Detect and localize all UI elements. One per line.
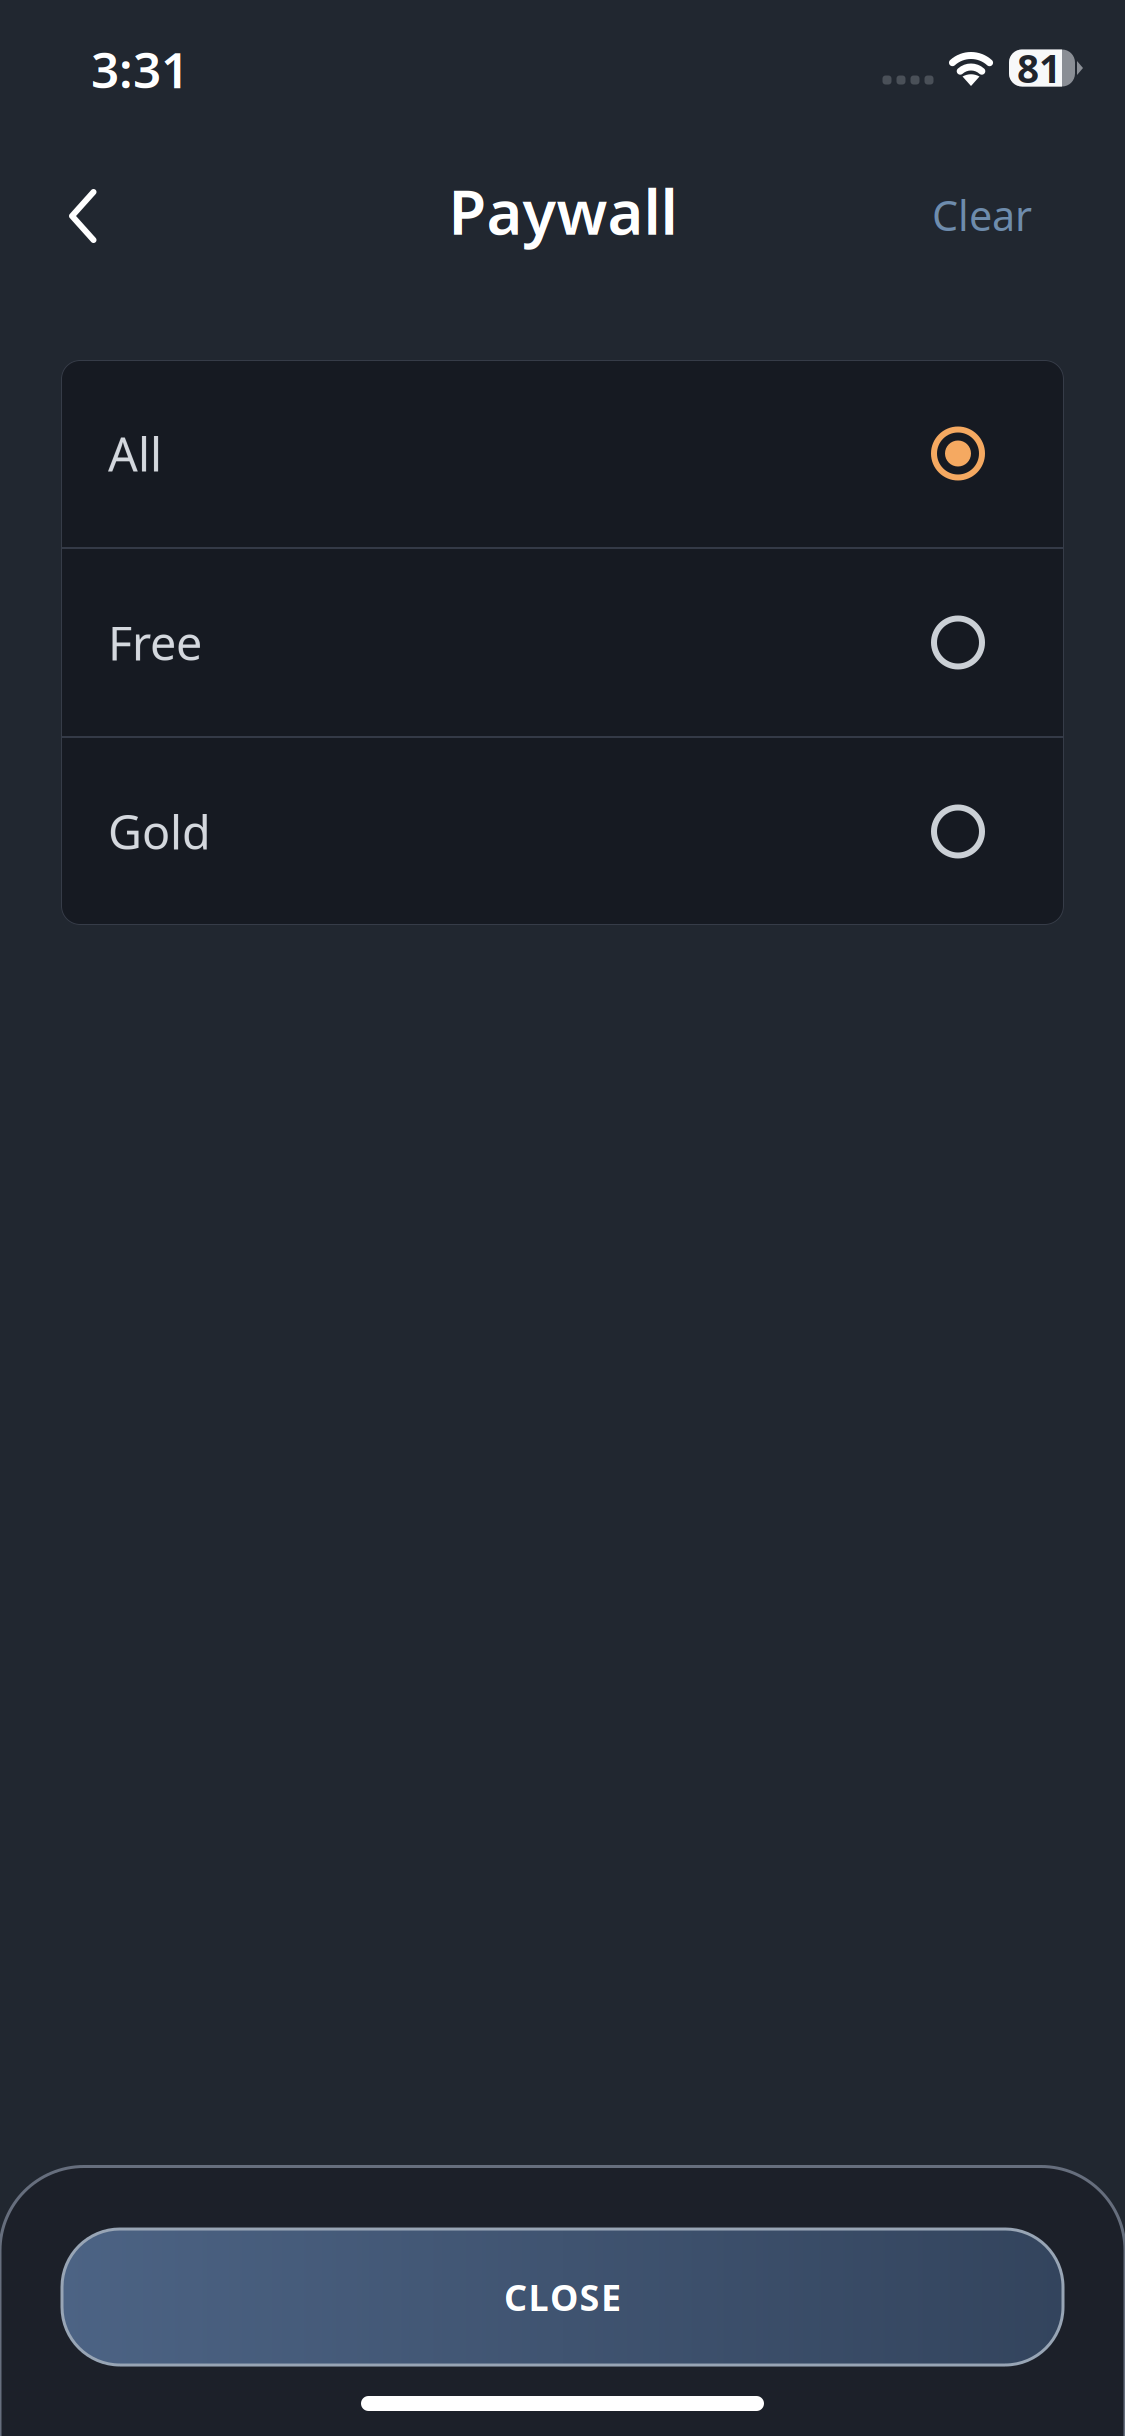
staticText: Paywall [448,170,677,252]
button[interactable]: All [61,360,1064,547]
button[interactable]: Back [28,161,138,271]
staticText: L [528,2273,548,2321]
staticText: S [579,2273,599,2321]
staticText: C [504,2273,527,2321]
staticText: Clear [932,188,1032,242]
staticText: Free [108,611,202,673]
button[interactable]: Free [61,549,1064,736]
staticText: O [550,2273,578,2321]
staticText: All [108,422,162,484]
staticText: Gold [108,800,211,862]
button[interactable]: C [62,2229,1063,2365]
staticText: 3:31 [91,36,189,102]
button[interactable]: Gold [61,738,1064,925]
staticText: E [601,2273,621,2321]
staticText: 81 [1017,42,1061,94]
button[interactable]: Clear [932,160,1032,270]
